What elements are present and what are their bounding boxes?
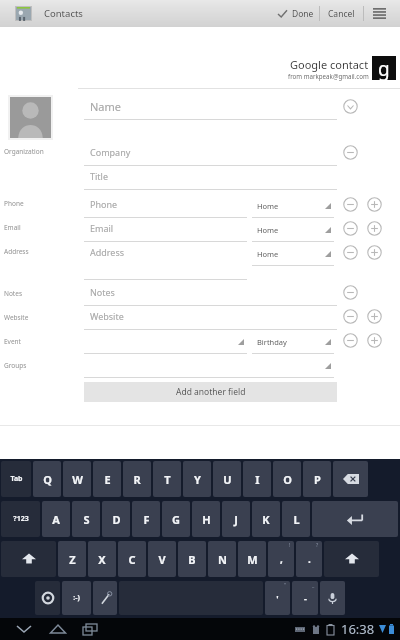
staticText: ?123: [13, 514, 29, 524]
button[interactable]: Cancel: [320, 0, 363, 27]
staticText: X: [98, 552, 106, 567]
button[interactable]: Done: [272, 0, 319, 27]
staticText: L: [293, 512, 300, 527]
button[interactable]: Key: [93, 581, 117, 615]
button[interactable]: Remove Phone: [339, 193, 361, 215]
button[interactable]: Home: [252, 242, 334, 266]
button[interactable]: Name: [84, 95, 337, 120]
button[interactable]: Remove Email: [339, 217, 361, 239]
button[interactable]: Add Phone: [363, 193, 385, 215]
button[interactable]: !: [268, 541, 294, 577]
button[interactable]: Remove event: [339, 329, 361, 351]
button[interactable]: ": [265, 581, 290, 615]
button[interactable]: Phone: [84, 194, 247, 218]
button[interactable]: Hide keyboard: [12, 618, 36, 640]
button[interactable]: Key: [312, 501, 398, 537]
button[interactable]: Company: [84, 142, 337, 166]
button[interactable]: Remove organization: [339, 141, 361, 163]
button[interactable]: U: [213, 461, 241, 497]
button[interactable]: N: [208, 541, 236, 577]
staticText: I: [255, 472, 260, 487]
button[interactable]: Home: [252, 194, 334, 218]
button[interactable]: Website: [84, 306, 337, 330]
button[interactable]: ?: [296, 541, 322, 577]
button[interactable]: T: [153, 461, 181, 497]
button[interactable]: L: [282, 501, 310, 537]
staticText: G: [172, 512, 180, 527]
button[interactable]: B: [178, 541, 206, 577]
button[interactable]: Z: [58, 541, 86, 577]
button[interactable]: M: [238, 541, 266, 577]
button[interactable]: E: [93, 461, 121, 497]
staticText: Contacts: [44, 7, 83, 20]
button[interactable]: J: [222, 501, 250, 537]
button[interactable]: D: [102, 501, 130, 537]
button[interactable]: R: [123, 461, 151, 497]
button[interactable]: Q: [33, 461, 61, 497]
button[interactable]: ?123: [1, 501, 40, 537]
button[interactable]: Address: [84, 242, 247, 280]
button[interactable]: Add Email: [363, 217, 385, 239]
button[interactable]: Key: [35, 581, 60, 615]
button[interactable]: Key: [333, 461, 368, 497]
staticText: .: [308, 552, 311, 566]
button[interactable]: Tab: [1, 461, 31, 497]
button[interactable]: _: [292, 581, 318, 615]
button[interactable]: K: [252, 501, 280, 537]
button[interactable]: Home: [252, 218, 334, 242]
button[interactable]: :-): [62, 581, 91, 615]
staticText: Name: [90, 99, 122, 114]
button[interactable]: Expand name fields: [339, 95, 361, 117]
button[interactable]: Contact photo: [8, 95, 53, 140]
button[interactable]: Y: [183, 461, 211, 497]
staticText: Y: [194, 472, 201, 487]
button[interactable]: Recent apps: [78, 618, 102, 640]
button[interactable]: C: [118, 541, 146, 577]
button[interactable]: Birthday: [252, 330, 334, 354]
button[interactable]: W: [63, 461, 91, 497]
button[interactable]: Notes: [84, 282, 337, 306]
button[interactable]: S: [72, 501, 100, 537]
staticText: Google contact: [290, 57, 369, 72]
staticText: :-): [73, 593, 80, 603]
staticText: O: [283, 472, 292, 487]
staticText: Tab: [10, 474, 23, 484]
button[interactable]: Home: [46, 618, 70, 640]
button[interactable]: H: [192, 501, 220, 537]
button[interactable]: Key: [320, 581, 345, 615]
staticText: Email: [4, 223, 21, 232]
button[interactable]: Remove notes: [339, 281, 361, 303]
button[interactable]: Title: [84, 166, 337, 190]
button[interactable]: Add event: [363, 329, 385, 351]
staticText: from markpeak@gmail.com: [288, 72, 369, 80]
button[interactable]: V: [148, 541, 176, 577]
button[interactable]: [84, 354, 334, 378]
button[interactable]: P: [303, 461, 331, 497]
button[interactable]: G: [162, 501, 190, 537]
staticText: -: [304, 592, 307, 604]
button[interactable]: Remove website: [339, 305, 361, 327]
button[interactable]: X: [88, 541, 116, 577]
button[interactable]: Key: [1, 541, 56, 577]
staticText: Home: [257, 249, 279, 259]
button[interactable]: O: [273, 461, 301, 497]
staticText: P: [314, 472, 321, 487]
staticText: 16:38: [341, 620, 375, 638]
button[interactable]: More options: [364, 0, 395, 27]
button[interactable]: Add another field: [84, 382, 337, 402]
button[interactable]: Key: [324, 541, 379, 577]
staticText: A: [52, 512, 60, 527]
button[interactable]: Email: [84, 218, 247, 242]
staticText: Z: [69, 552, 76, 567]
button[interactable]: [84, 330, 247, 354]
button[interactable]: Add Address: [363, 241, 385, 263]
button[interactable]: F: [132, 501, 160, 537]
staticText: Website: [4, 313, 29, 322]
button[interactable]: A: [42, 501, 70, 537]
button[interactable]: I: [243, 461, 271, 497]
button[interactable]: Add website: [363, 305, 385, 327]
staticText: C: [128, 552, 136, 567]
staticText: ': [276, 592, 279, 604]
button[interactable]: Remove Address: [339, 241, 361, 263]
